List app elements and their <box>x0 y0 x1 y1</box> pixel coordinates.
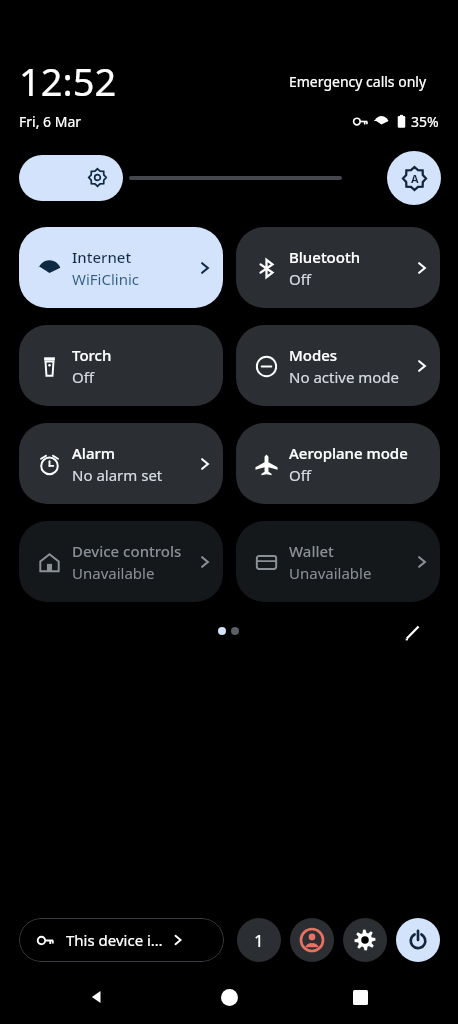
button[interactable]: Recent apps <box>339 976 381 1018</box>
button[interactable]: Settings <box>343 918 387 962</box>
staticText: Device controls <box>72 541 182 561</box>
staticText: Alarm <box>72 443 116 463</box>
button[interactable]: 1 notification <box>237 918 281 962</box>
staticText: Off <box>289 269 312 289</box>
button[interactable]: Aeroplane mode <box>236 423 440 504</box>
button[interactable]: Alarm <box>19 423 223 504</box>
button[interactable]: Auto brightness <box>387 151 441 205</box>
button[interactable]: Back <box>76 976 118 1018</box>
staticText: 12:52 <box>19 55 117 107</box>
button[interactable]: Bluetooth <box>236 227 440 308</box>
button[interactable]: Wallet <box>236 521 440 602</box>
button[interactable]: Modes <box>236 325 440 406</box>
staticText: Torch <box>72 345 112 365</box>
staticText: This device i… <box>66 930 163 950</box>
staticText: Modes <box>289 345 338 365</box>
staticText: Bluetooth <box>289 247 361 267</box>
staticText: Fri, 6 Mar <box>19 112 82 131</box>
staticText: A <box>411 171 419 186</box>
staticText: Emergency calls only <box>289 72 427 91</box>
staticText: Unavailable <box>72 563 155 583</box>
button[interactable]: Edit tiles <box>396 616 428 648</box>
button[interactable]: Device controls <box>19 521 223 602</box>
staticText: 35% <box>411 112 439 131</box>
staticText: Aeroplane mode <box>289 443 408 463</box>
staticText: No alarm set <box>72 465 163 485</box>
button[interactable]: Switch user <box>290 918 334 962</box>
staticText: Off <box>289 465 312 485</box>
staticText: Unavailable <box>289 563 372 583</box>
staticText: Off <box>72 367 95 387</box>
staticText: Wallet <box>289 541 334 561</box>
button[interactable]: Internet <box>19 227 223 308</box>
button[interactable]: This device i… <box>19 918 224 962</box>
staticText: WiFiClinic <box>72 269 140 289</box>
staticText: Internet <box>72 247 132 267</box>
button[interactable]: Brightness <box>19 155 342 201</box>
button[interactable]: Home <box>208 976 250 1018</box>
button[interactable]: Torch <box>19 325 223 406</box>
staticText: No active mode <box>289 367 400 387</box>
button[interactable]: Power <box>396 918 440 962</box>
staticText: 1 <box>254 929 264 952</box>
